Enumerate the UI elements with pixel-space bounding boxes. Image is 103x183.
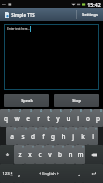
button[interactable]: Enter: [83, 164, 103, 183]
button[interactable]: English: [23, 164, 75, 183]
staticText: ,: [18, 169, 20, 178]
button[interactable]: s: [17, 127, 28, 145]
staticText: g: [51, 132, 55, 141]
staticText: j: [72, 132, 74, 141]
button[interactable]: Stop: [54, 94, 99, 107]
staticText: p: [96, 114, 100, 123]
staticText: t: [47, 114, 50, 123]
other: Backspace: [91, 153, 97, 157]
button[interactable]: w: [11, 109, 22, 127]
button[interactable]: Speak: [4, 94, 49, 107]
staticText: 2: [19, 109, 21, 113]
staticText: n: [68, 150, 73, 159]
button[interactable]: v: [45, 145, 55, 164]
button[interactable]: j: [68, 127, 78, 145]
staticText: r: [37, 114, 40, 123]
staticText: 15:42: [87, 1, 101, 8]
staticText: h: [61, 132, 66, 141]
staticText: 4: [40, 109, 42, 113]
button[interactable]: q: [0, 109, 11, 127]
button[interactable]: h: [58, 127, 68, 145]
staticText: l: [92, 132, 94, 141]
staticText: x: [28, 150, 32, 159]
staticText: u: [66, 114, 71, 123]
button[interactable]: b: [55, 145, 65, 164]
staticText: Speak: [21, 98, 33, 103]
staticText: 8: [80, 109, 82, 113]
button[interactable]: Settings: [77, 8, 103, 21]
button[interactable]: l: [88, 127, 98, 145]
button[interactable]: t: [43, 109, 53, 127]
staticText: 123: [2, 171, 10, 177]
staticText: q: [4, 114, 8, 123]
button[interactable]: p: [93, 109, 103, 127]
staticText: m: [77, 150, 84, 159]
staticText: Settings: [82, 12, 98, 17]
other: Enter: [91, 171, 96, 176]
button[interactable]: e: [22, 109, 33, 127]
staticText: b: [58, 150, 62, 159]
button[interactable]: x: [25, 145, 35, 164]
staticText: 6: [60, 109, 62, 113]
button[interactable]: k: [78, 127, 88, 145]
staticText: i: [77, 114, 79, 123]
button[interactable]: Shift: [0, 145, 14, 164]
staticText: a: [10, 132, 14, 141]
staticText: d: [31, 132, 35, 141]
button[interactable]: z: [14, 145, 25, 164]
button[interactable]: 123: [0, 164, 14, 183]
staticText: f: [42, 132, 45, 141]
button[interactable]: d: [28, 127, 38, 145]
staticText: 0: [100, 109, 102, 113]
button[interactable]: .: [75, 164, 83, 183]
staticText: k: [81, 132, 85, 141]
button[interactable]: f: [38, 127, 48, 145]
button[interactable]: y: [53, 109, 63, 127]
staticText: 5: [50, 109, 52, 113]
button[interactable]: u: [63, 109, 73, 127]
staticText: Enter text here...: [7, 27, 30, 31]
staticText: 1: [8, 109, 10, 113]
button[interactable]: a: [6, 127, 17, 145]
staticText: v: [48, 150, 52, 159]
button[interactable]: ,: [14, 164, 23, 183]
button[interactable]: r: [33, 109, 43, 127]
staticText: Simple TTS: [11, 12, 35, 18]
button[interactable]: Backspace: [85, 145, 103, 164]
staticText: 7: [70, 109, 72, 113]
staticText: 3: [30, 109, 32, 113]
staticText: c: [38, 150, 42, 159]
staticText: Stop: [72, 98, 81, 103]
staticText: 9: [90, 109, 92, 113]
button[interactable]: c: [35, 145, 45, 164]
staticText: English: [42, 171, 56, 176]
button[interactable]: o: [83, 109, 93, 127]
button[interactable]: n: [65, 145, 75, 164]
button[interactable]: Enter text here...: [4, 24, 99, 90]
staticText: s: [21, 132, 25, 141]
button[interactable]: m: [75, 145, 85, 164]
staticText: o: [86, 114, 90, 123]
button[interactable]: i: [73, 109, 83, 127]
staticText: y: [56, 114, 60, 123]
button[interactable]: g: [48, 127, 58, 145]
staticText: e: [26, 114, 30, 123]
other: Shift: [5, 152, 10, 157]
staticText: w: [14, 114, 20, 123]
staticText: .: [78, 169, 80, 178]
staticText: z: [18, 150, 22, 159]
